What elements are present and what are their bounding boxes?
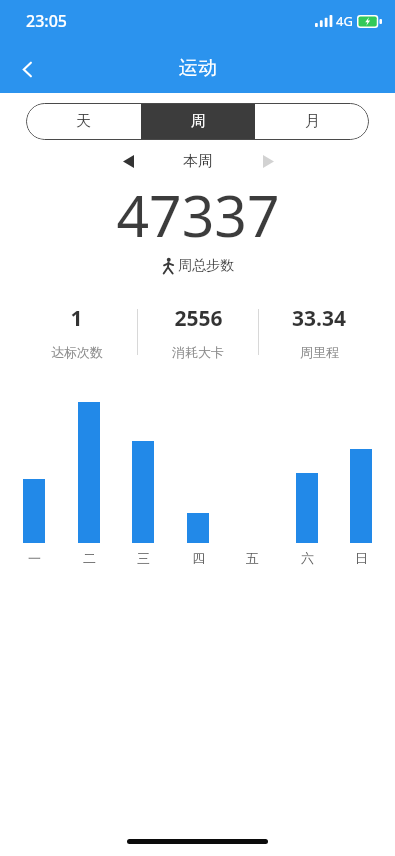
- button[interactable]: 六: [291, 398, 323, 566]
- staticText: 周总步数: [178, 257, 234, 275]
- staticText: 23:05: [26, 10, 67, 32]
- button[interactable]: 天: [26, 103, 141, 140]
- staticText: 周里程: [300, 344, 339, 360]
- button[interactable]: 五: [236, 398, 268, 566]
- staticText: 四: [192, 550, 205, 566]
- staticText: 消耗大卡: [172, 344, 224, 360]
- button[interactable]: 日: [345, 398, 377, 566]
- staticText: 运动: [179, 56, 217, 80]
- button[interactable]: 四: [182, 398, 214, 566]
- button[interactable]: 2556: [138, 304, 258, 360]
- staticText: 日: [355, 550, 368, 566]
- button[interactable]: 33.34: [259, 304, 379, 360]
- staticText: 天: [76, 112, 91, 131]
- button[interactable]: 三: [127, 398, 159, 566]
- button[interactable]: 周: [141, 103, 255, 140]
- button[interactable]: 一: [18, 398, 50, 566]
- staticText: 33.34: [292, 304, 346, 333]
- staticText: 达标次数: [51, 344, 103, 360]
- staticText: 六: [301, 550, 314, 566]
- staticText: 47337: [116, 176, 280, 254]
- button[interactable]: 1: [16, 304, 137, 360]
- button[interactable]: Previous week: [110, 149, 146, 173]
- button[interactable]: Next week: [250, 149, 286, 173]
- staticText: 本周: [183, 152, 213, 171]
- button[interactable]: 月: [255, 103, 369, 140]
- staticText: 五: [246, 550, 259, 566]
- staticText: 一: [28, 550, 41, 566]
- button[interactable]: Back: [4, 46, 50, 92]
- staticText: 二: [83, 550, 96, 566]
- staticText: 三: [137, 550, 150, 566]
- staticText: 月: [305, 112, 320, 131]
- staticText: 2556: [174, 304, 223, 333]
- staticText: 周: [191, 112, 206, 131]
- staticText: 1: [70, 304, 83, 333]
- button[interactable]: 二: [73, 398, 105, 566]
- staticText: 4G: [336, 12, 353, 30]
